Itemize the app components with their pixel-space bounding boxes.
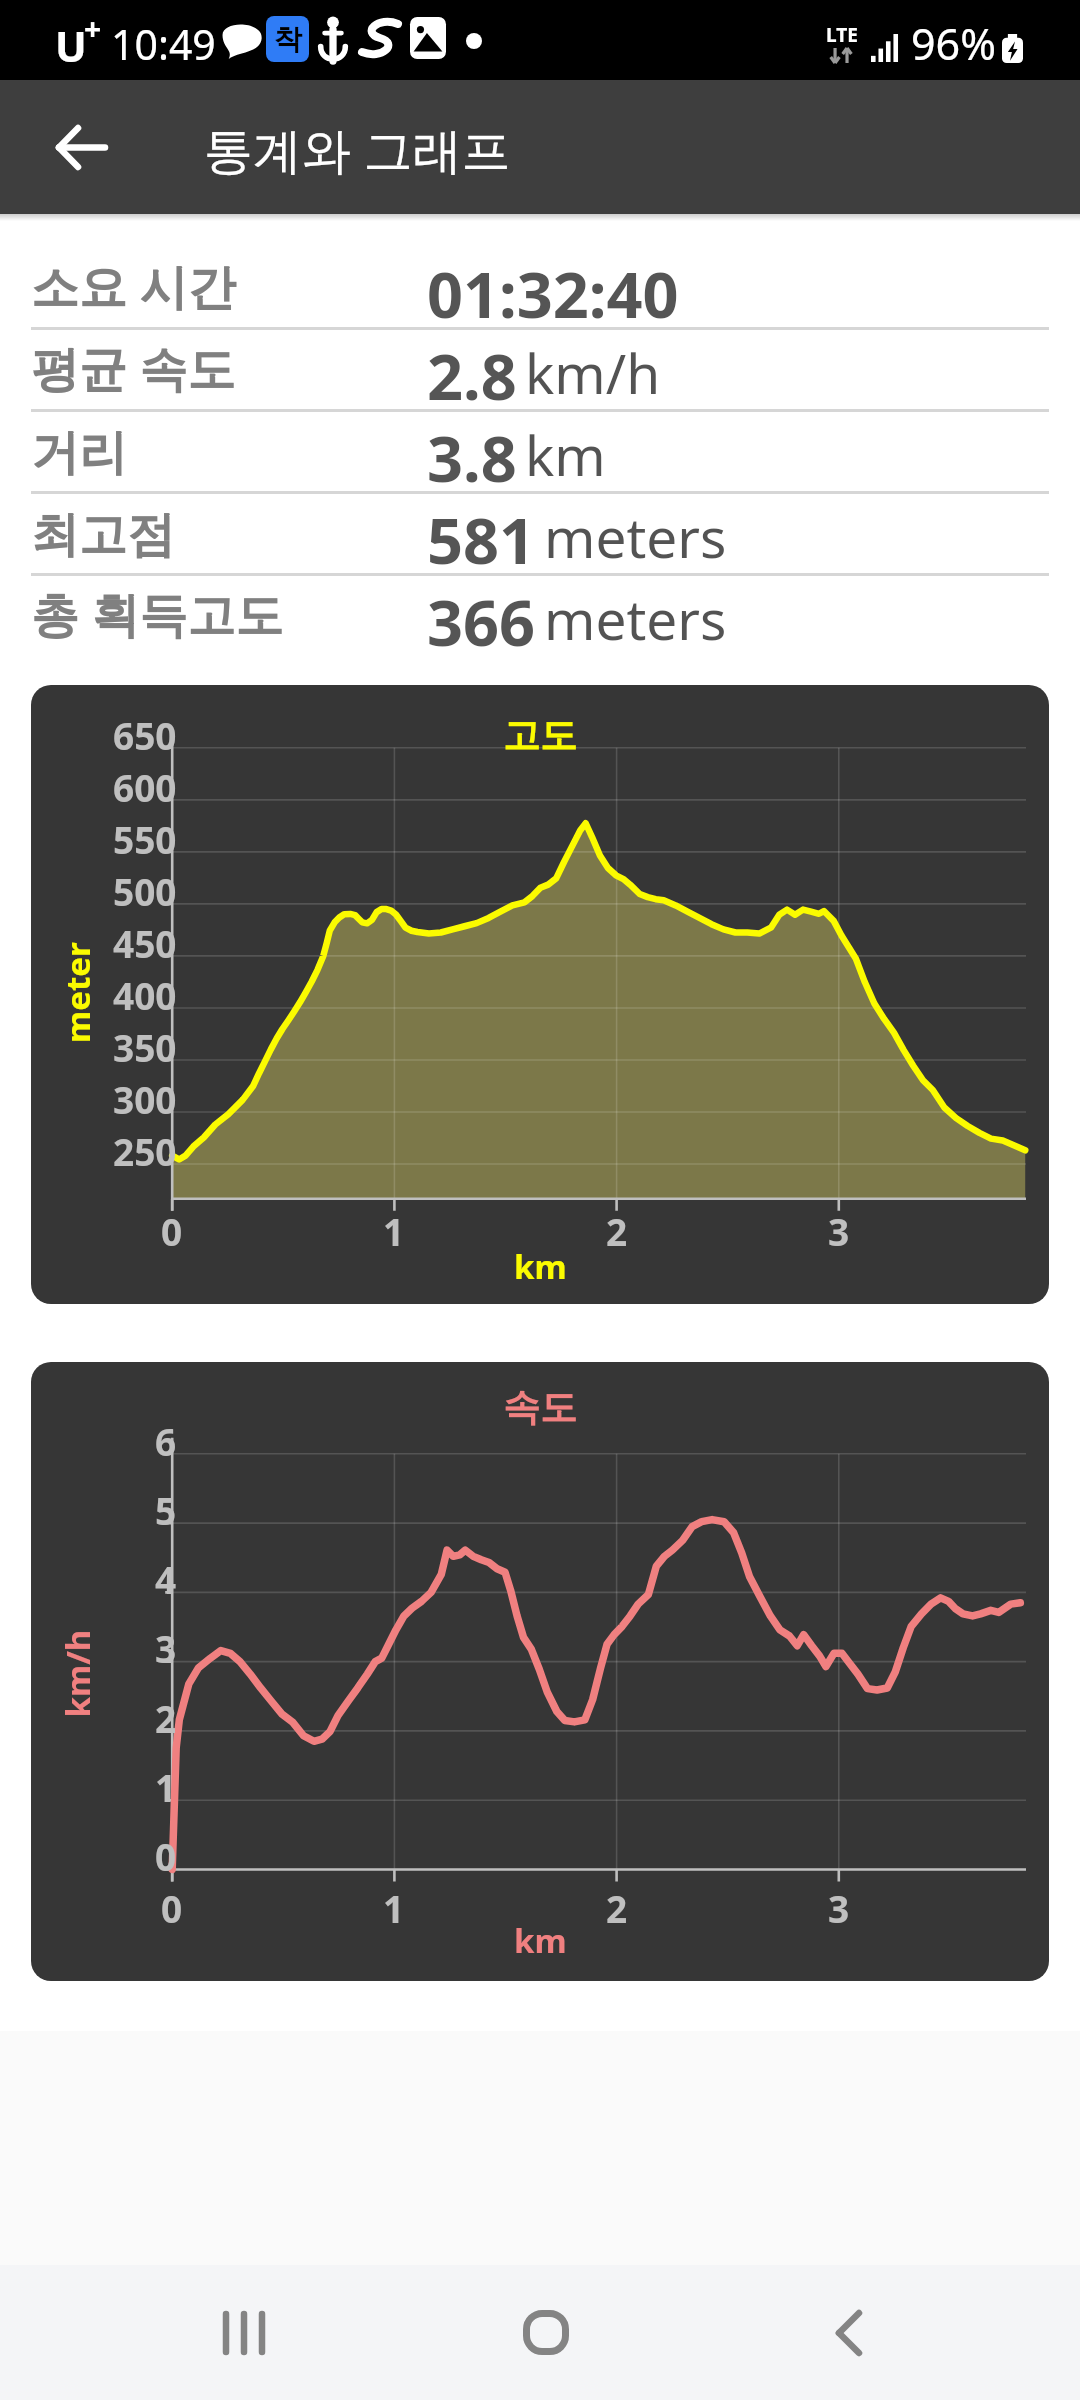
button[interactable]: Back [0, 80, 161, 214]
button[interactable]: Back [759, 2265, 939, 2400]
staticText: 0 [161, 1883, 183, 1933]
staticText: 소요 시간 [31, 253, 236, 319]
staticText: LTE [826, 22, 858, 48]
staticText: 1 [155, 1762, 177, 1812]
staticText: 통계와 그래프 [204, 116, 511, 183]
staticText: 평균 속도 [31, 335, 236, 401]
staticText: 최고점 [31, 505, 175, 565]
button[interactable]: Home [456, 2265, 636, 2400]
staticText: 550 [113, 814, 177, 864]
staticText: 6 [155, 1416, 177, 1466]
staticText: 350 [113, 1022, 177, 1072]
staticText: km [525, 417, 606, 492]
staticText: 1 [383, 1206, 405, 1256]
staticText: 500 [113, 866, 177, 916]
staticText: 2 [155, 1693, 177, 1743]
staticText: 10:49 [111, 16, 216, 72]
staticText: km [514, 1244, 567, 1289]
staticText: 650 [113, 710, 177, 760]
staticText: 5 [155, 1485, 177, 1535]
staticText: 300 [113, 1074, 177, 1124]
button[interactable]: 총 획득고도 [31, 576, 1049, 658]
staticText: 250 [113, 1126, 177, 1176]
staticText: 600 [113, 762, 177, 812]
button[interactable]: 소요 시간 [31, 248, 1049, 330]
staticText: 581 [427, 497, 536, 579]
staticText: 총 획득고도 [31, 581, 284, 647]
staticText: meter [55, 942, 100, 1043]
button[interactable]: Recent apps [154, 2265, 334, 2400]
staticText: 4 [155, 1554, 177, 1604]
staticText: 거리 [31, 423, 127, 483]
staticText: 착 [274, 22, 302, 57]
staticText: 2 [606, 1883, 628, 1933]
staticText: 0 [155, 1831, 177, 1881]
button[interactable]: 650 [31, 685, 1049, 1304]
staticText: 1 [383, 1883, 405, 1933]
staticText: 450 [113, 918, 177, 968]
staticText: 366 [427, 579, 536, 661]
staticText: 3 [828, 1883, 850, 1933]
button[interactable]: 거리 [31, 412, 1049, 494]
staticText: km [514, 1918, 567, 1963]
staticText: meters [544, 499, 727, 574]
staticText: U [55, 17, 87, 74]
staticText: km/h [54, 1629, 99, 1717]
staticText: 2.8 [427, 333, 517, 415]
staticText: 고도 [503, 712, 577, 759]
staticText: 0 [161, 1206, 183, 1256]
staticText: 3 [155, 1623, 177, 1673]
button[interactable]: 최고점 [31, 494, 1049, 576]
staticText: meters [544, 581, 727, 656]
staticText: 01:32:40 [427, 251, 679, 333]
button[interactable]: 평균 속도 [31, 330, 1049, 412]
staticText: + [84, 8, 102, 49]
button[interactable]: 6 [31, 1362, 1049, 1981]
staticText: 400 [113, 970, 177, 1020]
staticText: 3 [828, 1206, 850, 1256]
staticText: 속도 [503, 1384, 577, 1431]
staticText: 3.8 [427, 415, 517, 497]
staticText: 96% [911, 14, 996, 73]
staticText: km/h [525, 335, 661, 410]
staticText: 2 [606, 1206, 628, 1256]
